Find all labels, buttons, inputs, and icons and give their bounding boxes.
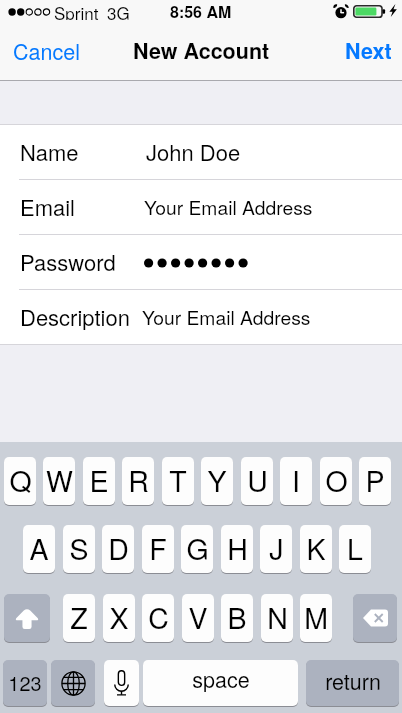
button[interactable]: O (320, 457, 352, 505)
button[interactable]: J (260, 525, 292, 573)
staticText: S (69, 527, 89, 568)
button[interactable]: Dictation (104, 660, 139, 706)
button[interactable]: Description (0, 290, 402, 345)
staticText: Password (20, 246, 116, 278)
button[interactable]: A (23, 525, 55, 573)
button[interactable]: X (103, 594, 135, 642)
staticText: 3G (107, 0, 130, 20)
staticText: space (192, 663, 250, 694)
staticText: Y (207, 459, 227, 500)
button[interactable]: Email (0, 180, 402, 235)
staticText: I (292, 459, 300, 500)
staticText: N (267, 596, 288, 637)
button[interactable]: R (122, 457, 154, 505)
button[interactable]: F (142, 525, 174, 573)
staticText: C (148, 596, 169, 637)
button[interactable]: Name (0, 125, 402, 180)
staticText: Your Email Address (142, 303, 311, 331)
staticText: M (304, 596, 328, 637)
button[interactable]: Backspace (353, 594, 397, 642)
staticText: Your Email Address (144, 193, 313, 221)
button[interactable]: B (221, 594, 253, 642)
button[interactable]: Change keyboard (51, 660, 95, 706)
staticText: L (347, 527, 363, 568)
button[interactable]: E (83, 457, 115, 505)
button[interactable]: K (300, 525, 332, 573)
staticText: P (365, 459, 385, 500)
staticText: F (149, 527, 167, 568)
staticText: New Account (133, 35, 270, 66)
staticText: Sprint (54, 0, 99, 20)
button[interactable]: U (241, 457, 273, 505)
button[interactable]: D (102, 525, 134, 573)
staticText: T (169, 459, 187, 500)
staticText: H (227, 527, 248, 568)
button[interactable]: Shift (4, 594, 50, 642)
staticText: V (188, 596, 208, 637)
button[interactable]: G (181, 525, 213, 573)
button[interactable]: M (300, 594, 332, 642)
staticText: 8:56 AM (170, 0, 232, 20)
staticText: Description (20, 301, 130, 333)
staticText: O (325, 459, 348, 500)
staticText: E (89, 459, 109, 500)
button[interactable]: N (261, 594, 293, 642)
staticText: G (186, 527, 209, 568)
staticText: K (306, 527, 326, 568)
staticText: Q (9, 459, 32, 500)
button[interactable]: Y (201, 457, 233, 505)
button[interactable]: return (306, 660, 399, 706)
staticText: R (128, 459, 149, 500)
staticText: Email (20, 191, 76, 223)
button[interactable]: space (143, 660, 298, 706)
button[interactable]: L (339, 525, 371, 573)
staticText: A (29, 527, 49, 568)
staticText: return (325, 665, 381, 696)
button[interactable]: Next (332, 27, 402, 74)
staticText: Name (20, 136, 79, 168)
staticText: W (46, 459, 73, 500)
button[interactable]: S (63, 525, 95, 573)
button[interactable]: I (280, 457, 312, 505)
button[interactable]: Cancel (0, 27, 93, 74)
button[interactable]: H (221, 525, 253, 573)
staticText: Z (70, 596, 88, 637)
button[interactable]: T (162, 457, 194, 505)
button[interactable]: V (182, 594, 214, 642)
button[interactable]: Q (4, 457, 36, 505)
staticText: Next (345, 35, 392, 66)
staticText: 123 (8, 668, 42, 697)
staticText: X (109, 596, 129, 637)
button[interactable]: Z (63, 594, 95, 642)
staticText: D (108, 527, 129, 568)
button[interactable]: 123 (3, 660, 47, 706)
button[interactable]: Password (0, 235, 402, 290)
staticText: U (247, 459, 268, 500)
button[interactable]: P (359, 457, 391, 505)
staticText: B (227, 596, 247, 637)
button[interactable]: C (142, 594, 174, 642)
staticText: J (269, 527, 284, 568)
button[interactable]: W (43, 457, 75, 505)
staticText: Cancel (13, 35, 80, 66)
staticText: John Doe (146, 136, 241, 168)
